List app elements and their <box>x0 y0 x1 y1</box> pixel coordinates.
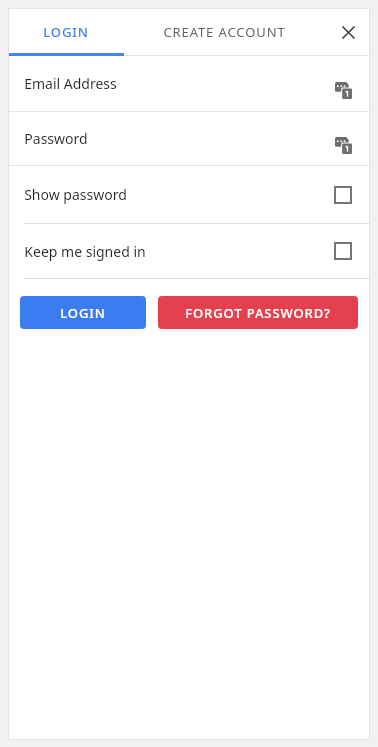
staticText: Email Address <box>24 74 117 93</box>
button[interactable]: LOGIN <box>8 8 124 56</box>
staticText: Password <box>24 129 88 148</box>
button[interactable]: Email Address <box>8 56 370 111</box>
button[interactable]: Show password <box>8 166 370 223</box>
button[interactable]: CREATE ACCOUNT <box>124 8 324 56</box>
staticText: LOGIN <box>43 23 89 41</box>
other: Autofill suggestions <box>335 82 352 99</box>
other: Autofill suggestions <box>335 137 352 154</box>
staticText: Show password <box>24 185 127 204</box>
button[interactable]: Keep me signed in <box>8 224 370 278</box>
staticText: FORGOT PASSWORD? <box>185 304 331 322</box>
button[interactable]: Password <box>8 112 370 165</box>
button[interactable]: Close <box>326 8 370 56</box>
button[interactable]: FORGOT PASSWORD? <box>158 296 358 329</box>
staticText: LOGIN <box>60 304 106 322</box>
staticText: Keep me signed in <box>24 242 146 261</box>
staticText: CREATE ACCOUNT <box>163 23 286 41</box>
button[interactable]: LOGIN <box>20 296 146 329</box>
